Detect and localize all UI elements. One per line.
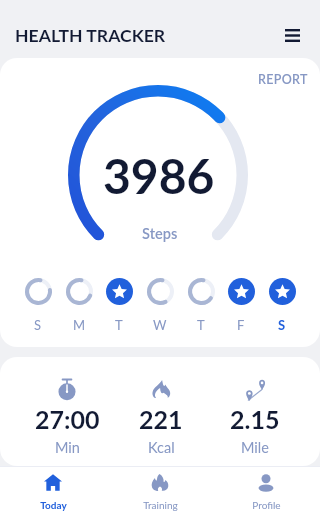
button[interactable]: 27:00 — [23, 377, 111, 456]
staticText: 3986 — [103, 147, 215, 205]
button[interactable]: F — [222, 278, 260, 333]
staticText: Min — [55, 439, 80, 456]
button[interactable]: Menu — [277, 20, 307, 50]
staticText: Steps — [142, 225, 178, 243]
staticText: Training — [143, 499, 178, 511]
staticText: Profile — [252, 499, 281, 511]
button[interactable]: S — [19, 278, 57, 333]
staticText: Kcal — [148, 439, 175, 456]
staticText: Today — [40, 499, 67, 511]
button[interactable]: 221 — [117, 377, 205, 456]
button[interactable]: S — [263, 278, 301, 333]
button[interactable]: W — [141, 278, 179, 333]
button[interactable]: T — [100, 278, 138, 333]
button[interactable]: Today — [10, 467, 96, 511]
staticText: M — [73, 317, 86, 333]
button[interactable]: Profile — [223, 467, 309, 511]
staticText: Mile — [241, 439, 269, 456]
staticText: S — [34, 317, 42, 333]
staticText: F — [237, 317, 245, 333]
button[interactable]: Training — [117, 467, 203, 511]
staticText: HEALTH TRACKER — [15, 25, 166, 46]
staticText: T — [197, 317, 205, 333]
staticText: S — [278, 317, 286, 333]
staticText: 27:00 — [35, 404, 100, 434]
button[interactable]: 2.15 — [211, 377, 299, 456]
staticText: W — [153, 317, 167, 333]
button[interactable]: REPORT — [258, 72, 308, 87]
staticText: 2.15 — [230, 404, 280, 434]
button[interactable]: M — [60, 278, 98, 333]
staticText: 221 — [139, 404, 183, 434]
button[interactable]: T — [182, 278, 220, 333]
staticText: T — [115, 317, 123, 333]
